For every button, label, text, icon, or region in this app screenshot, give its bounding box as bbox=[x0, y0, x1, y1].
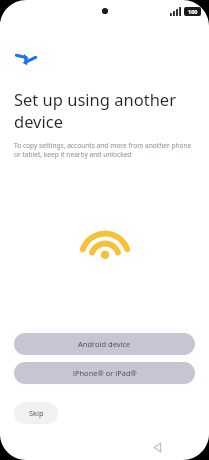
staticText: To copy settings, accounts and more from… bbox=[14, 141, 192, 150]
button[interactable]: Skip bbox=[14, 402, 58, 424]
button[interactable]: Back bbox=[147, 437, 167, 457]
staticText: Set up using another bbox=[14, 88, 176, 110]
staticText: iPhone® or iPad® bbox=[73, 368, 137, 378]
staticText: 100 bbox=[188, 8, 198, 15]
staticText: Skip bbox=[29, 408, 44, 418]
button[interactable]: Android device bbox=[14, 333, 195, 355]
staticText: device bbox=[14, 110, 63, 132]
staticText: Android device bbox=[78, 339, 131, 349]
staticText: or tablet, keep it nearby and unlocked bbox=[14, 150, 132, 159]
button[interactable]: iPhone® or iPad® bbox=[14, 362, 195, 384]
